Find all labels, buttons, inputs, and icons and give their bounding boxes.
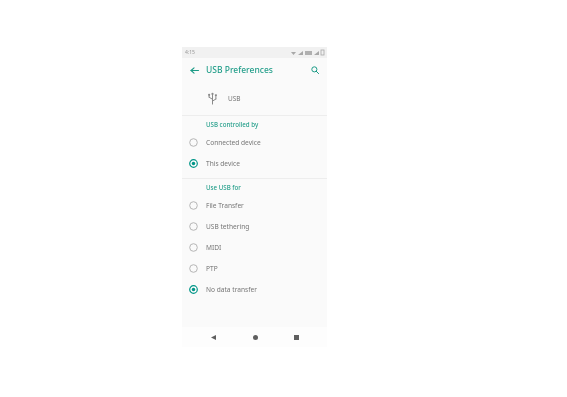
button[interactable]: Home bbox=[245, 327, 265, 347]
staticText: This device bbox=[206, 159, 240, 168]
button[interactable]: USB tethering bbox=[182, 216, 327, 237]
staticText: 4:15 bbox=[185, 49, 195, 56]
button[interactable]: Search bbox=[308, 63, 322, 77]
staticText: USB Preferences bbox=[206, 64, 273, 76]
button[interactable]: USB bbox=[182, 82, 327, 115]
staticText: USB controlled by bbox=[206, 120, 259, 128]
button[interactable]: Recent apps bbox=[286, 327, 306, 347]
button[interactable]: MIDI bbox=[182, 237, 327, 258]
staticText: No data transfer bbox=[206, 285, 257, 294]
button[interactable]: PTP bbox=[182, 258, 327, 279]
button[interactable]: Back bbox=[187, 63, 201, 77]
button[interactable]: Back bbox=[203, 327, 223, 347]
staticText: Connected device bbox=[206, 138, 261, 147]
button[interactable]: Connected device bbox=[182, 132, 327, 153]
staticText: PTP bbox=[206, 264, 218, 273]
staticText: USB bbox=[228, 94, 241, 103]
button[interactable]: No data transfer bbox=[182, 279, 327, 300]
staticText: USB tethering bbox=[206, 222, 250, 231]
button[interactable]: File Transfer bbox=[182, 195, 327, 216]
staticText: MIDI bbox=[206, 243, 222, 252]
staticText: Use USB for bbox=[206, 183, 241, 191]
staticText: File Transfer bbox=[206, 201, 244, 210]
button[interactable]: This device bbox=[182, 153, 327, 174]
